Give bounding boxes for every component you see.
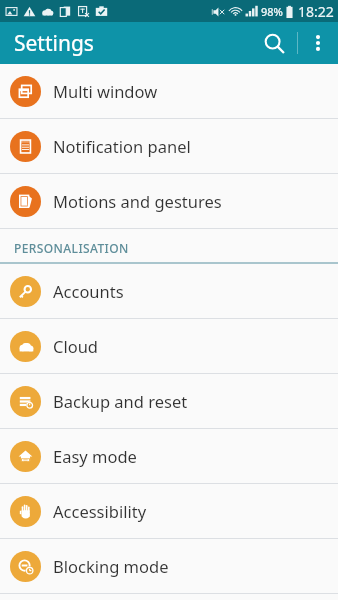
staticText: 18:22 bbox=[298, 2, 334, 21]
button[interactable]: Cloud bbox=[0, 319, 338, 373]
staticText: Accounts bbox=[53, 280, 124, 302]
button[interactable]: More options bbox=[298, 23, 338, 63]
button[interactable]: Backup and reset bbox=[0, 374, 338, 428]
staticText: Accessibility bbox=[53, 500, 147, 522]
staticText: Backup and reset bbox=[53, 390, 188, 412]
button[interactable]: Accounts bbox=[0, 264, 338, 318]
button[interactable]: Motions and gestures bbox=[0, 174, 338, 228]
staticText: Easy mode bbox=[53, 445, 137, 467]
staticText: Settings bbox=[14, 29, 94, 58]
button[interactable]: Easy mode bbox=[0, 429, 338, 483]
staticText: Motions and gestures bbox=[53, 190, 222, 212]
staticText: PERSONALISATION bbox=[14, 240, 129, 256]
button[interactable]: Accessibility bbox=[0, 484, 338, 538]
staticText: 98% bbox=[261, 4, 283, 19]
button[interactable]: Notification panel bbox=[0, 119, 338, 173]
staticText: Cloud bbox=[53, 335, 99, 357]
button[interactable]: Search bbox=[251, 22, 297, 64]
button[interactable]: Multi window bbox=[0, 64, 338, 118]
staticText: Multi window bbox=[53, 80, 158, 102]
staticText: Notification panel bbox=[53, 135, 191, 157]
button[interactable]: Blocking mode bbox=[0, 539, 338, 593]
staticText: Blocking mode bbox=[53, 555, 169, 577]
